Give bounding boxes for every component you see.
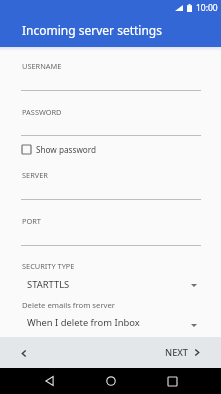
button[interactable]: When I delete from Inbox bbox=[21, 316, 200, 329]
staticText: STARTTLS bbox=[27, 278, 70, 291]
staticText: Show password bbox=[36, 144, 97, 155]
staticText: Incoming server settings bbox=[22, 22, 162, 38]
staticText: SERVER bbox=[22, 170, 48, 180]
staticText: PASSWORD bbox=[22, 107, 62, 117]
button[interactable] bbox=[0, 56, 221, 93]
button[interactable]: NEXT bbox=[165, 346, 199, 359]
staticText: USERNAME bbox=[22, 61, 62, 71]
button[interactable]: Recent apps bbox=[159, 368, 185, 394]
staticText: SECURITY TYPE bbox=[22, 261, 75, 271]
button[interactable]: Previous bbox=[14, 343, 34, 363]
button[interactable]: STARTTLS bbox=[21, 278, 200, 291]
button[interactable]: Back bbox=[36, 368, 62, 394]
staticText: Delete emails from server bbox=[22, 300, 115, 310]
staticText: PORT bbox=[22, 216, 41, 226]
staticText: When I delete from Inbox bbox=[27, 316, 140, 329]
button[interactable] bbox=[0, 211, 221, 248]
staticText: NEXT bbox=[165, 346, 189, 359]
button[interactable] bbox=[0, 102, 221, 138]
button[interactable] bbox=[0, 165, 221, 202]
button[interactable]: Home bbox=[98, 368, 124, 394]
staticText: 10:00 bbox=[196, 2, 218, 14]
button[interactable]: Show password bbox=[22, 143, 97, 155]
